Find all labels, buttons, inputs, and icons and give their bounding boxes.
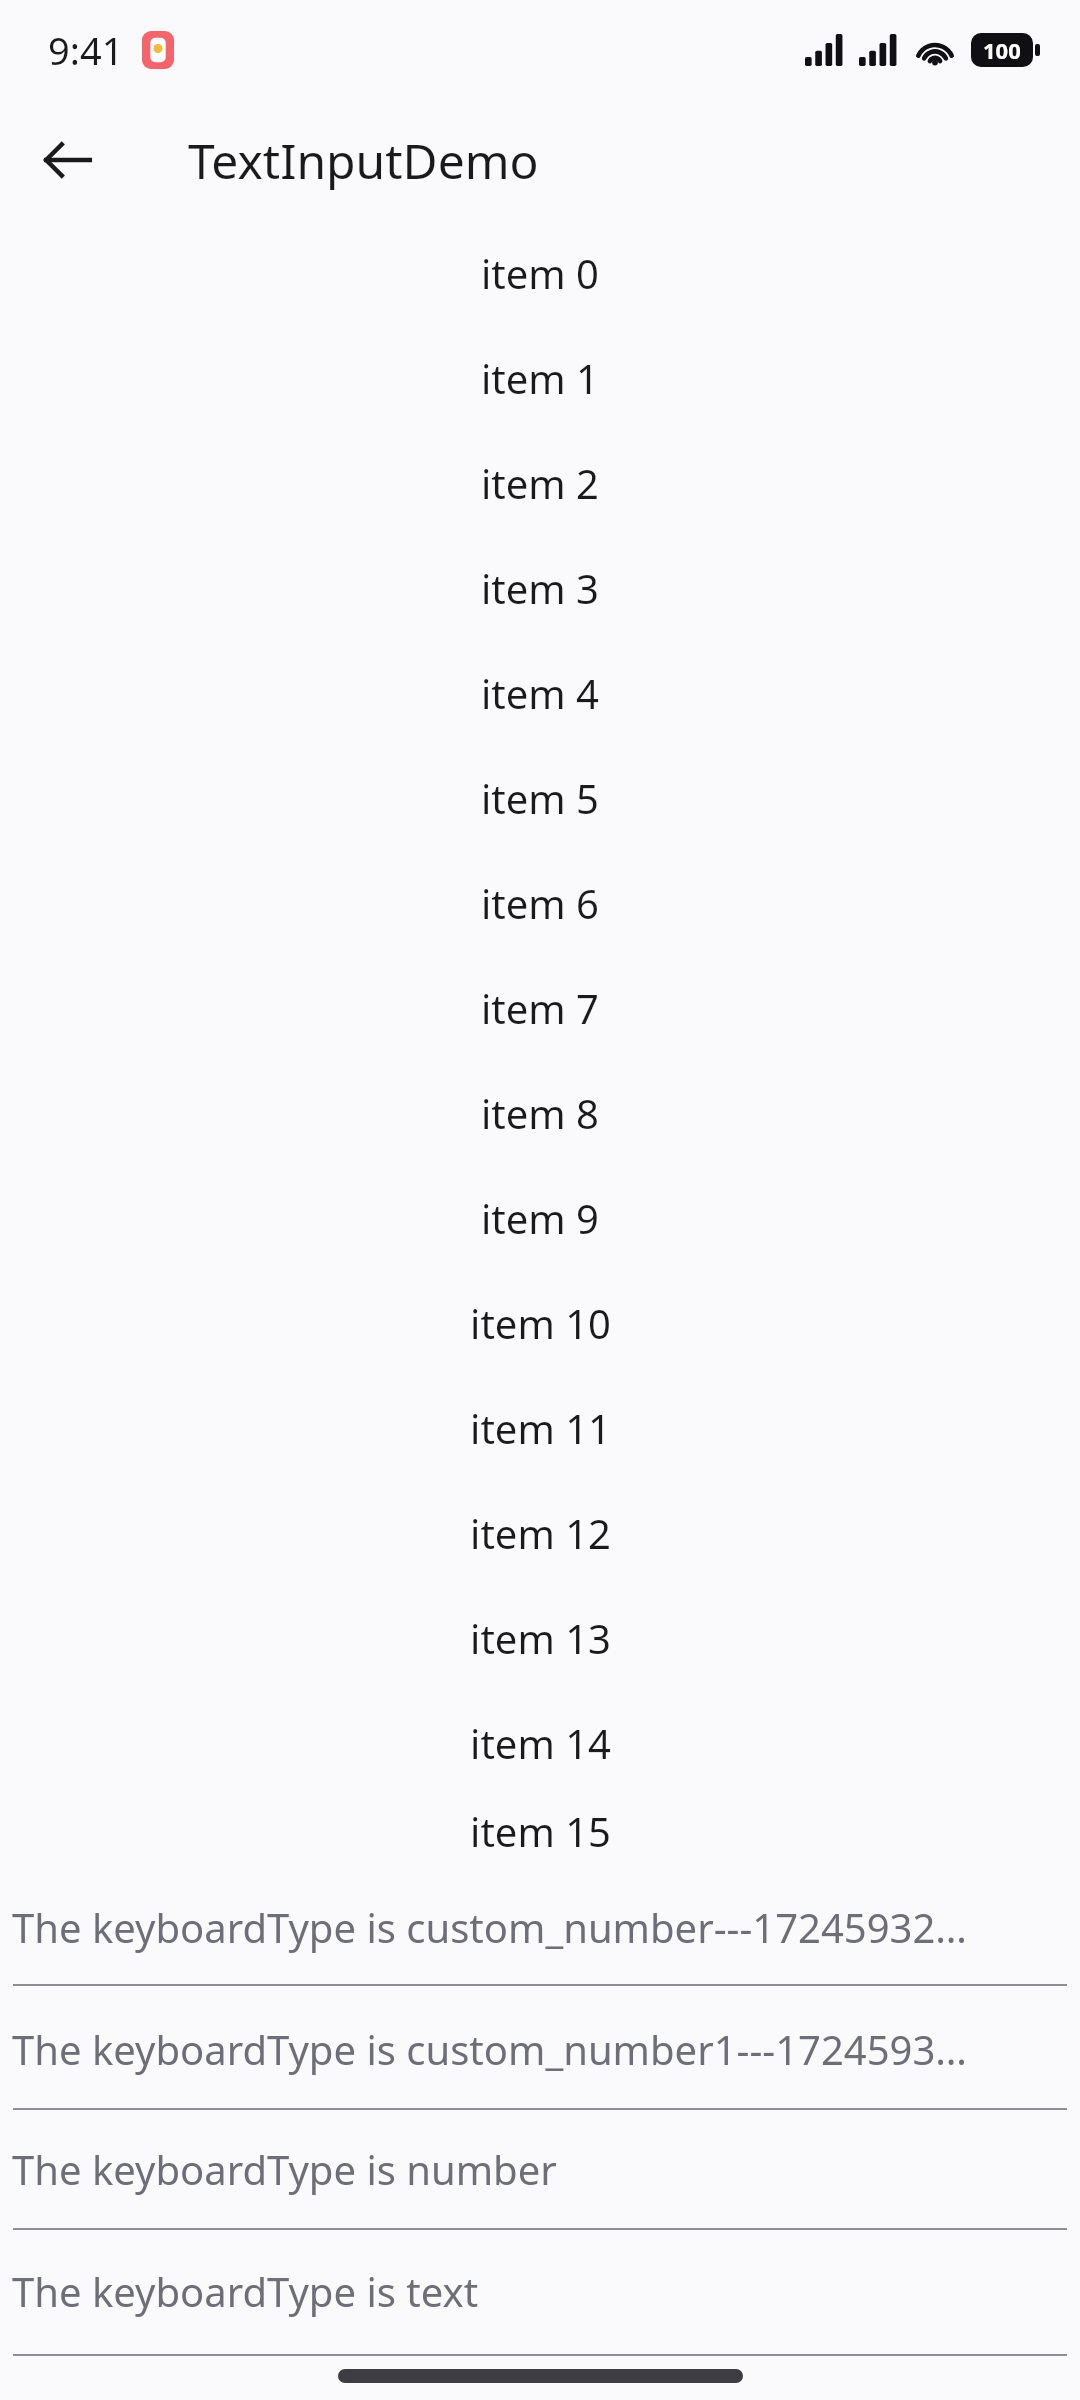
- staticText: item 1: [481, 351, 599, 405]
- staticText: The keyboardType is custom_number1---172…: [12, 2022, 1068, 2076]
- staticText: item 12: [470, 1506, 611, 1560]
- button[interactable]: item 3: [0, 535, 1080, 640]
- staticText: item 4: [481, 666, 599, 720]
- staticText: item 5: [481, 771, 599, 825]
- button[interactable]: item 0: [0, 220, 1080, 325]
- button[interactable]: item 15: [0, 1795, 1080, 1866]
- button[interactable]: Back: [26, 118, 110, 202]
- button[interactable]: item 8: [0, 1060, 1080, 1165]
- staticText: The keyboardType is custom_number---1724…: [12, 1900, 1068, 1954]
- staticText: item 2: [481, 456, 599, 510]
- staticText: The keyboardType is number: [12, 2142, 1068, 2196]
- button[interactable]: The keyboardType is custom_number---1724…: [0, 1866, 1080, 1986]
- button[interactable]: item 10: [0, 1270, 1080, 1375]
- button[interactable]: item 6: [0, 850, 1080, 955]
- staticText: item 9: [481, 1191, 599, 1245]
- staticText: TextInputDemo: [188, 128, 539, 193]
- staticText: item 6: [481, 876, 599, 930]
- button[interactable]: The keyboardType is custom_number1---172…: [0, 1986, 1080, 2110]
- staticText: item 7: [481, 981, 599, 1035]
- button[interactable]: The keyboardType is text: [0, 2230, 1080, 2356]
- button[interactable]: The keyboardType is number: [0, 2110, 1080, 2230]
- button[interactable]: item 12: [0, 1480, 1080, 1585]
- staticText: 100: [983, 35, 1021, 65]
- button[interactable]: item 13: [0, 1585, 1080, 1690]
- staticText: item 11: [470, 1401, 611, 1455]
- staticText: item 10: [470, 1296, 611, 1350]
- button[interactable]: item 14: [0, 1690, 1080, 1795]
- staticText: 9:41: [48, 24, 124, 76]
- staticText: item 14: [470, 1716, 611, 1770]
- staticText: item 13: [470, 1611, 611, 1665]
- staticText: item 15: [470, 1804, 611, 1858]
- button[interactable]: item 1: [0, 325, 1080, 430]
- button[interactable]: item 9: [0, 1165, 1080, 1270]
- button[interactable]: item 4: [0, 640, 1080, 745]
- button[interactable]: item 11: [0, 1375, 1080, 1480]
- staticText: item 0: [481, 246, 599, 300]
- staticText: The keyboardType is text: [12, 2264, 1068, 2318]
- staticText: item 3: [481, 561, 599, 615]
- button[interactable]: item 2: [0, 430, 1080, 535]
- button[interactable]: item 7: [0, 955, 1080, 1060]
- button[interactable]: item 5: [0, 745, 1080, 850]
- staticText: item 8: [481, 1086, 599, 1140]
